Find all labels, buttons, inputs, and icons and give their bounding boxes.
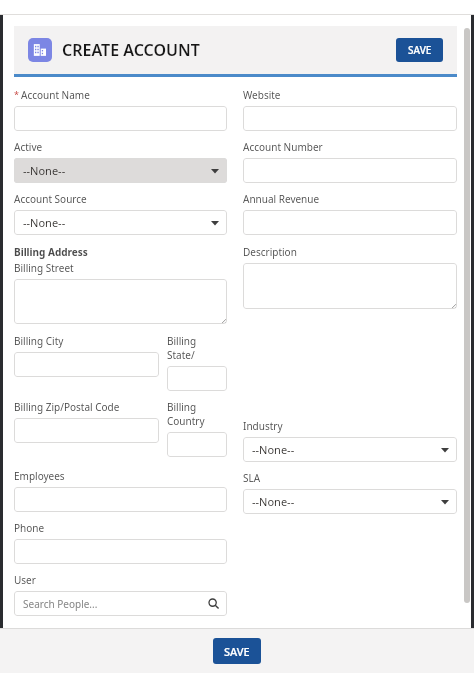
staticText: Billing Street bbox=[14, 261, 74, 275]
staticText: Account Name bbox=[21, 88, 90, 102]
staticText: Billing City bbox=[14, 334, 64, 348]
button[interactable]: SAVE bbox=[396, 38, 443, 62]
staticText: Country bbox=[167, 414, 205, 428]
staticText: User bbox=[14, 573, 36, 587]
button[interactable]: Search People... bbox=[14, 591, 227, 616]
staticText: Billing Address bbox=[14, 245, 88, 259]
staticText: Billing bbox=[167, 400, 197, 414]
button[interactable] bbox=[14, 539, 227, 564]
other: Search bbox=[208, 598, 219, 609]
staticText: Active bbox=[14, 140, 43, 154]
staticText: Phone bbox=[14, 521, 45, 535]
staticText: --None-- bbox=[23, 215, 66, 230]
staticText: Website bbox=[243, 88, 281, 102]
staticText: * bbox=[14, 88, 19, 100]
button[interactable] bbox=[167, 366, 227, 391]
staticText: Annual Revenue bbox=[243, 192, 320, 206]
button[interactable] bbox=[167, 432, 227, 457]
staticText: Billing bbox=[167, 334, 197, 348]
staticText: Industry bbox=[243, 419, 283, 433]
button[interactable] bbox=[243, 106, 457, 131]
button[interactable] bbox=[14, 106, 227, 131]
staticText: CREATE ACCOUNT bbox=[62, 39, 200, 61]
staticText: --None-- bbox=[252, 494, 295, 509]
button[interactable]: --None-- bbox=[243, 489, 457, 514]
staticText: SLA bbox=[243, 471, 261, 485]
button[interactable]: --None-- bbox=[14, 210, 227, 235]
staticText: Employees bbox=[14, 469, 65, 483]
button[interactable]: SAVE bbox=[213, 638, 261, 664]
button[interactable] bbox=[14, 352, 159, 377]
staticText: --None-- bbox=[252, 442, 295, 457]
button[interactable] bbox=[243, 263, 457, 309]
staticText: SAVE bbox=[224, 644, 250, 659]
button[interactable] bbox=[14, 418, 159, 443]
staticText: Account Number bbox=[243, 140, 323, 154]
button[interactable] bbox=[14, 279, 227, 324]
staticText: --None-- bbox=[23, 163, 66, 178]
staticText: Search People... bbox=[23, 597, 98, 611]
button[interactable]: --None-- bbox=[243, 437, 457, 462]
staticText: Account Source bbox=[14, 192, 87, 206]
staticText: State/Province bbox=[167, 348, 227, 362]
staticText: Billing Zip/Postal Code bbox=[14, 400, 120, 414]
button[interactable] bbox=[243, 158, 457, 183]
staticText: Description bbox=[243, 245, 297, 259]
button[interactable] bbox=[14, 487, 227, 512]
staticText: SAVE bbox=[408, 43, 432, 57]
button[interactable] bbox=[243, 210, 457, 235]
button[interactable]: --None-- bbox=[14, 158, 227, 183]
